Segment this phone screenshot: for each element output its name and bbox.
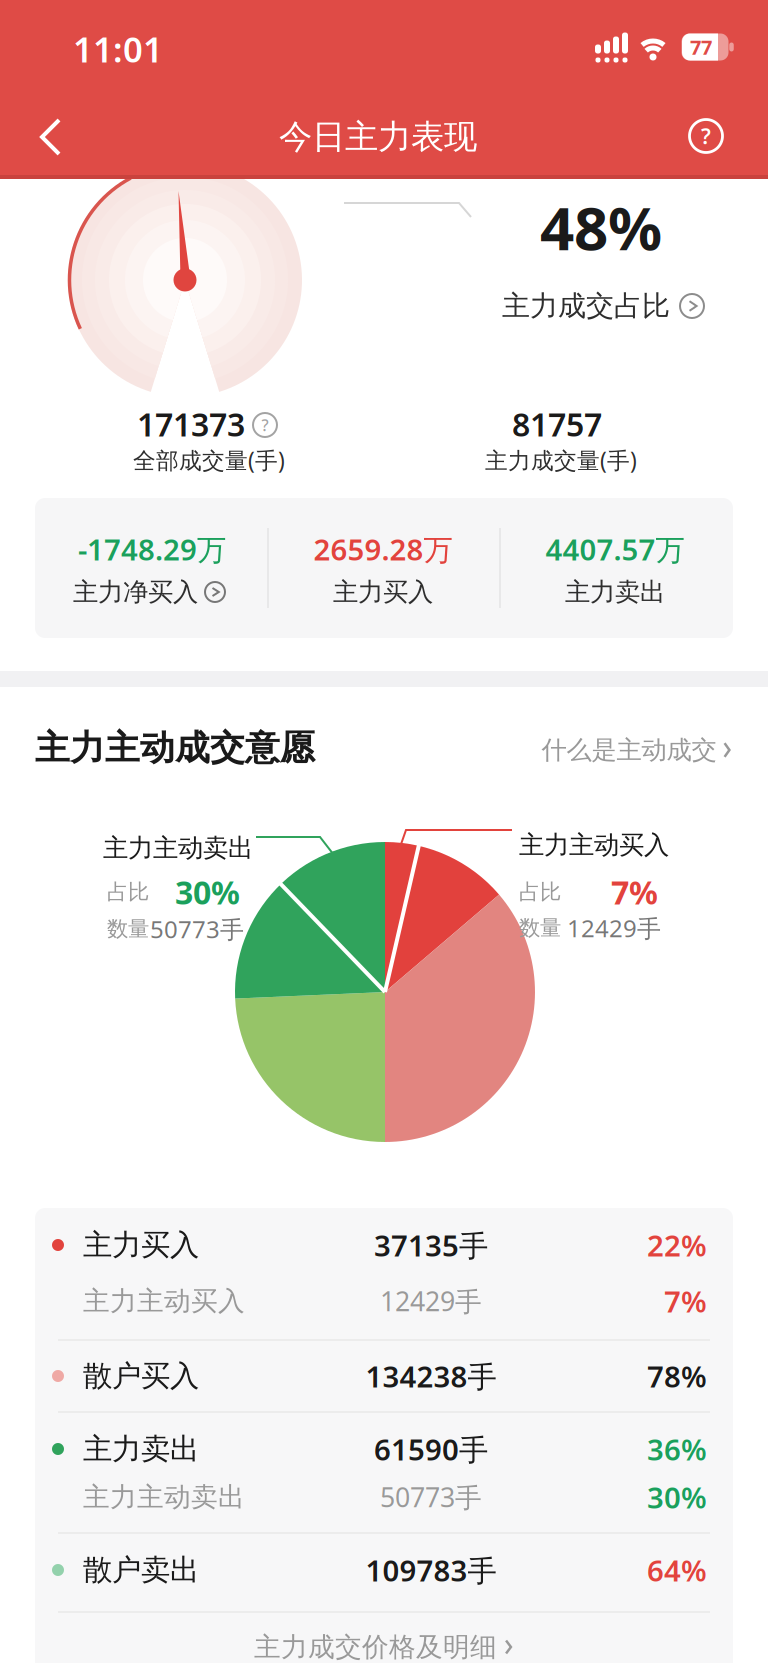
staticText: 11:01 <box>73 26 163 72</box>
staticText: 散户卖出 <box>83 1552 199 1588</box>
staticText: 37135手 <box>374 1225 488 1264</box>
button[interactable]: 主力成交价格及明细 <box>254 1631 514 1663</box>
staticText: 50773手 <box>150 913 244 945</box>
staticText: 散户买入 <box>83 1358 199 1394</box>
staticText: 64% <box>647 1550 707 1589</box>
button[interactable]: 主力净买入 <box>73 576 227 607</box>
staticText: 109783手 <box>365 1550 496 1589</box>
staticText: 48% <box>540 187 662 267</box>
staticText: 30% <box>175 871 240 913</box>
button[interactable]: 什么是主动成交 <box>541 734 732 765</box>
staticText: 今日主力表现 <box>279 116 477 157</box>
staticText: 36% <box>647 1429 707 1468</box>
button[interactable]: Help <box>686 116 726 156</box>
staticText: 主力卖出 <box>83 1431 199 1467</box>
staticText: 81757 <box>512 403 602 445</box>
staticText: ? <box>701 122 711 150</box>
button[interactable]: 主力成交占比 <box>502 289 706 323</box>
staticText: 7% <box>611 871 658 913</box>
staticText: 50773手 <box>380 1479 482 1515</box>
staticText: 12429手 <box>567 912 661 944</box>
staticText: 主力主动买入 <box>83 1285 245 1317</box>
staticText: 78% <box>647 1356 707 1395</box>
staticText: 主力主动成交意愿 <box>35 727 315 769</box>
staticText: 主力买入 <box>83 1227 199 1263</box>
staticText: 22% <box>647 1225 707 1264</box>
staticText: 171373 <box>137 403 245 445</box>
staticText: 主力成交价格及明细 <box>254 1631 497 1663</box>
staticText: 12429手 <box>380 1283 482 1319</box>
staticText: 主力成交量(手) <box>485 445 637 475</box>
staticText: 全部成交量(手) <box>133 445 285 475</box>
staticText: 主力主动买入 <box>519 829 669 860</box>
staticText: 77 <box>690 34 712 60</box>
staticText: 134238手 <box>365 1356 496 1395</box>
staticText: 4407.57万 <box>545 529 684 568</box>
staticText: 占比 <box>107 879 149 905</box>
staticText: 主力净买入 <box>73 576 198 607</box>
staticText: ? <box>261 414 268 436</box>
button[interactable]: 全部成交量说明 <box>251 411 279 439</box>
staticText: 主力卖出 <box>565 576 665 607</box>
staticText: 什么是主动成交 <box>541 734 716 765</box>
staticText: -1748.29万 <box>78 529 226 568</box>
staticText: 2659.28万 <box>313 529 452 568</box>
staticText: 占比 <box>519 879 561 905</box>
staticText: 主力成交占比 <box>502 289 670 323</box>
staticText: 61590手 <box>374 1429 488 1468</box>
button[interactable]: Back <box>38 117 64 157</box>
staticText: 主力主动卖出 <box>103 832 253 863</box>
staticText: 主力买入 <box>333 576 433 607</box>
staticText: 数量 <box>107 916 149 942</box>
staticText: 主力主动卖出 <box>83 1481 245 1513</box>
staticText: 7% <box>664 1281 707 1320</box>
staticText: 30% <box>647 1477 707 1516</box>
staticText: 数量 <box>519 915 561 941</box>
